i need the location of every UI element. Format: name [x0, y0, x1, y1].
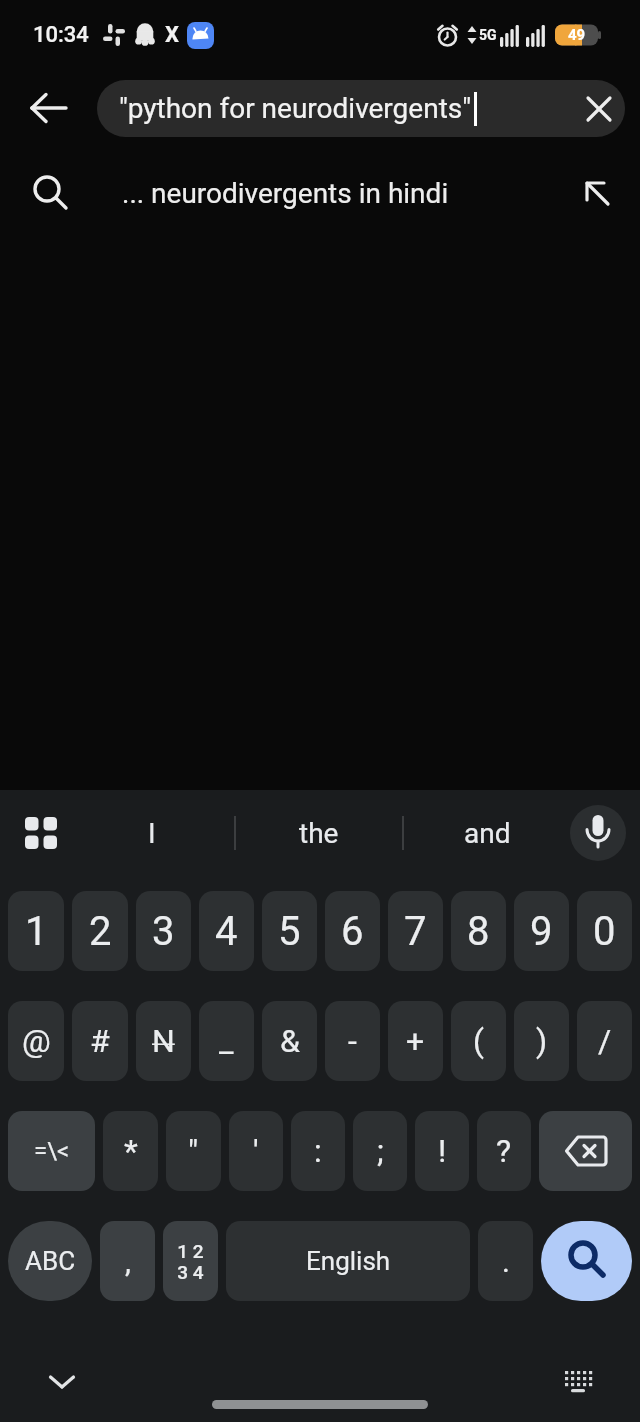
staticText: 10:34	[33, 22, 89, 48]
button[interactable]: ,	[100, 1221, 155, 1301]
staticText: 49	[568, 26, 586, 44]
button[interactable]	[40, 1364, 84, 1400]
button[interactable]: ;	[353, 1111, 407, 1191]
staticText: 1 2 3 4	[177, 1240, 204, 1283]
staticText: #	[90, 1022, 110, 1060]
button[interactable]: :	[291, 1111, 345, 1191]
staticText: .	[502, 1244, 510, 1279]
staticText: '	[253, 1132, 259, 1170]
button[interactable]: 0	[577, 891, 632, 971]
button[interactable]: *	[103, 1111, 158, 1191]
staticText: ,	[125, 1244, 131, 1279]
button[interactable]: -	[325, 1001, 380, 1081]
staticText: @	[22, 1022, 51, 1060]
staticText: (	[473, 1022, 484, 1060]
button[interactable]	[556, 1364, 600, 1400]
staticText: "python for neurodivergents"	[119, 92, 472, 125]
button[interactable]	[570, 805, 626, 861]
button[interactable]: _	[199, 1001, 254, 1081]
button[interactable]: 3	[136, 891, 191, 971]
staticText: 3	[152, 908, 175, 955]
button[interactable]	[567, 163, 627, 223]
button[interactable]: '	[229, 1111, 283, 1191]
button[interactable]: English	[226, 1221, 470, 1301]
button[interactable]: 4	[199, 891, 254, 971]
button[interactable]: 9	[514, 891, 569, 971]
button[interactable]: 1 2 3 4	[163, 1221, 218, 1301]
button[interactable]	[541, 1221, 632, 1301]
button[interactable]: "	[166, 1111, 221, 1191]
staticText: )	[536, 1022, 548, 1060]
button[interactable]: 7	[388, 891, 443, 971]
staticText: /	[598, 1022, 612, 1060]
staticText: =\<	[34, 1137, 70, 1165]
button[interactable]: #	[72, 1001, 128, 1081]
button[interactable]: I	[69, 790, 234, 876]
button[interactable]: @	[8, 1001, 64, 1081]
button[interactable]	[573, 83, 625, 135]
button[interactable]: "python for neurodivergents"	[97, 80, 625, 137]
staticText: 1	[25, 908, 48, 955]
button[interactable]	[539, 1111, 632, 1191]
button[interactable]: N	[136, 1001, 191, 1081]
staticText: and	[464, 817, 511, 850]
button[interactable]: ... neurodivergents in hindi	[0, 146, 640, 240]
button[interactable]: 5	[262, 891, 317, 971]
button[interactable]: +	[388, 1001, 443, 1081]
staticText: &	[280, 1022, 300, 1060]
button[interactable]: /	[577, 1001, 632, 1081]
staticText: ABC	[25, 1246, 76, 1276]
staticText: 9	[530, 908, 553, 955]
staticText: 0	[593, 908, 616, 955]
button[interactable]: )	[514, 1001, 569, 1081]
button[interactable]: ABC	[8, 1221, 92, 1301]
button[interactable]	[25, 811, 69, 855]
button[interactable]	[0, 70, 97, 146]
staticText: N	[152, 1022, 175, 1060]
button[interactable]: 1	[8, 891, 64, 971]
staticText: -	[348, 1022, 357, 1060]
staticText: I	[148, 817, 156, 850]
button[interactable]: 2	[72, 891, 128, 971]
staticText: English	[306, 1246, 391, 1276]
staticText: ... neurodivergents in hindi	[122, 177, 567, 210]
button[interactable]: =\<	[8, 1111, 95, 1191]
staticText: the	[299, 817, 339, 850]
staticText: !	[438, 1132, 447, 1170]
button[interactable]: the	[236, 790, 402, 876]
button[interactable]: .	[478, 1221, 533, 1301]
button[interactable]: 8	[451, 891, 506, 971]
staticText: 8	[467, 908, 490, 955]
staticText: :	[314, 1132, 322, 1170]
button[interactable]: &	[262, 1001, 317, 1081]
staticText: _	[219, 1022, 234, 1060]
staticText: 5G	[479, 27, 497, 43]
staticText: +	[406, 1022, 425, 1060]
staticText: ?	[496, 1132, 512, 1170]
staticText: "	[188, 1132, 199, 1170]
button[interactable]: !	[415, 1111, 469, 1191]
button[interactable]: (	[451, 1001, 506, 1081]
staticText: X	[165, 22, 179, 48]
staticText: 5	[278, 908, 301, 955]
staticText: 7	[404, 908, 427, 955]
staticText: 6	[341, 908, 364, 955]
staticText: 4	[215, 908, 238, 955]
button[interactable]: ?	[477, 1111, 531, 1191]
button[interactable]: 6	[325, 891, 380, 971]
staticText: ;	[377, 1132, 384, 1170]
staticText: *	[124, 1132, 138, 1170]
staticText: 2	[89, 908, 112, 955]
button[interactable]: and	[404, 790, 570, 876]
